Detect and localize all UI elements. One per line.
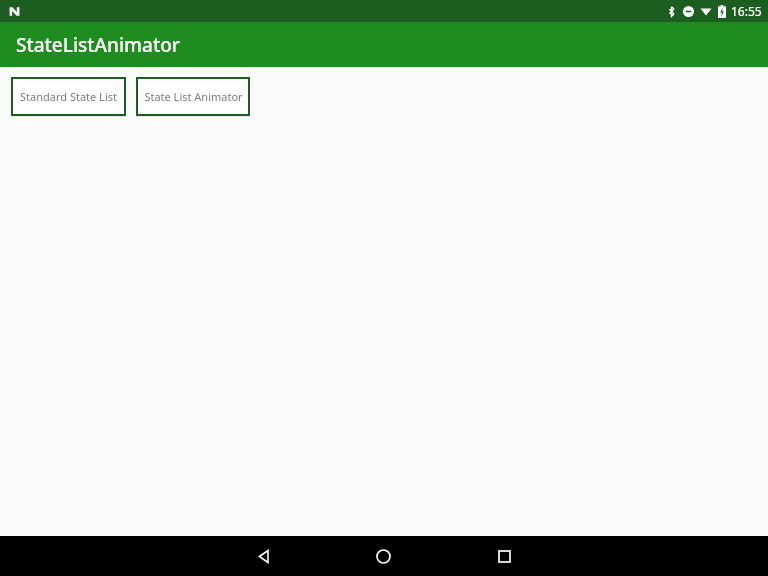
staticText: StateListAnimator bbox=[16, 32, 180, 58]
button[interactable]: Standard State List bbox=[11, 77, 126, 116]
button[interactable]: State List Animator bbox=[136, 77, 250, 116]
staticText: 16:55 bbox=[731, 3, 762, 19]
staticText: State List Animator bbox=[144, 89, 243, 104]
staticText: Standard State List bbox=[20, 89, 117, 104]
button[interactable]: Recent apps bbox=[484, 536, 524, 576]
button[interactable]: Back bbox=[243, 536, 283, 576]
button[interactable]: Home bbox=[363, 536, 403, 576]
